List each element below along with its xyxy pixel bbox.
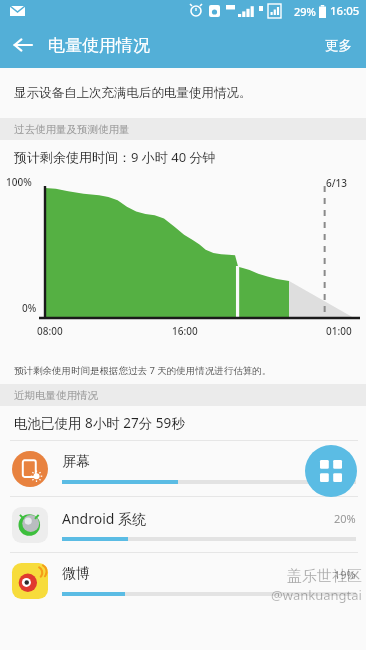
staticText: 近期电量使用情况 [14,389,98,402]
staticText: 6/13 [326,176,348,190]
staticText: 01:00 [326,324,352,338]
staticText: 19% [334,567,356,582]
button[interactable]: Android 系统 [0,497,366,552]
staticText: 微博 [62,565,90,583]
button[interactable]: 更多 [311,22,366,68]
staticText: 更多 [325,37,352,54]
staticText: 显示设备自上次充满电后的电量使用情况。 [14,85,252,101]
staticText: 0% [22,301,37,315]
staticText: 电池已使用 8小时 27分 59秒 [14,414,185,432]
staticText: 电量使用情况 [48,35,150,56]
staticText: 08:00 [37,324,63,338]
staticText: 16:05 [330,3,360,19]
staticText: 预计剩余使用时间是根据您过去 7 天的使用情况进行估算的。 [14,364,272,377]
button[interactable]: 返回 [0,22,46,68]
button[interactable]: 屏幕 [0,441,366,496]
staticText: 100% [6,175,32,189]
staticText: @wankuangtai [271,586,362,604]
staticText: 盖乐世社区 [287,567,362,586]
staticText: 20% [334,511,356,526]
button[interactable]: 微博 [0,553,366,608]
staticText: Android 系统 [62,509,147,528]
staticText: 过去使用量及预测使用量 [14,123,130,136]
staticText: 屏幕 [62,453,90,471]
staticText: 预计剩余使用时间：9 小时 40 分钟 [14,148,216,166]
staticText: 16:00 [172,324,198,338]
button[interactable]: 应用列表 [305,445,357,497]
staticText: 29% [294,4,316,19]
